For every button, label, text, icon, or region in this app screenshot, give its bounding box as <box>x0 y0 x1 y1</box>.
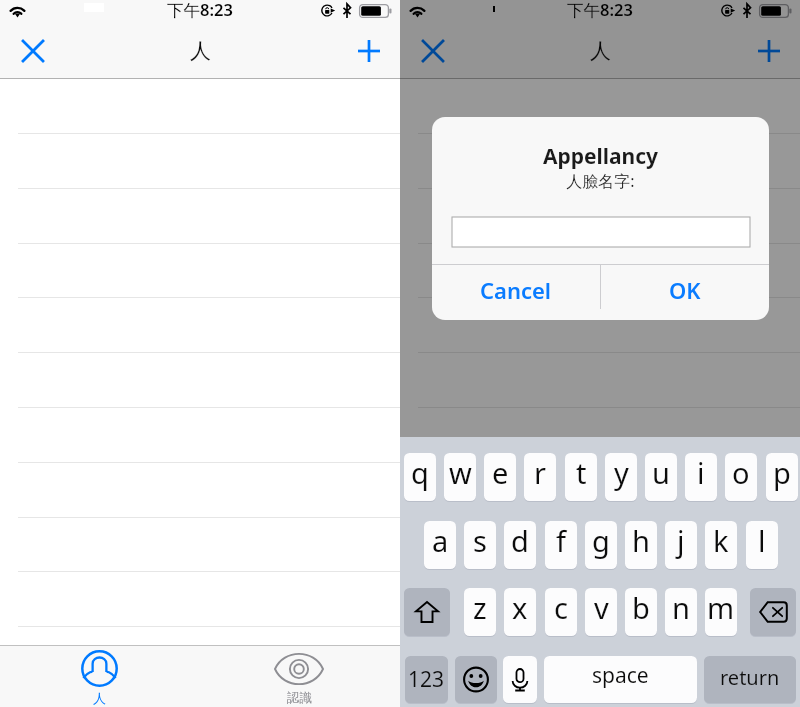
staticText: c <box>554 588 568 627</box>
button[interactable]: l <box>746 521 778 569</box>
button[interactable]: Dictation <box>503 656 537 703</box>
staticText: 人 <box>190 38 211 64</box>
button[interactable]: m <box>705 588 737 636</box>
button[interactable]: g <box>585 521 617 569</box>
button[interactable]: Cancel <box>432 265 600 319</box>
staticText: b <box>632 588 650 627</box>
button[interactable]: c <box>545 588 577 636</box>
button[interactable]: n <box>665 588 697 636</box>
staticText: 123 <box>408 665 445 694</box>
button[interactable] <box>400 188 800 243</box>
staticText: a <box>432 521 449 560</box>
button[interactable] <box>400 408 800 463</box>
button[interactable]: OK <box>601 265 769 319</box>
button[interactable]: f <box>545 521 577 569</box>
button[interactable]: s <box>464 521 496 569</box>
button[interactable]: 認識 <box>200 645 400 707</box>
button[interactable]: Add <box>346 22 391 79</box>
button[interactable]: h <box>625 521 657 569</box>
button[interactable]: k <box>705 521 737 569</box>
button[interactable]: i <box>685 453 717 501</box>
button[interactable] <box>0 517 400 572</box>
button[interactable]: Close <box>10 22 55 79</box>
button[interactable]: r <box>524 453 556 501</box>
button[interactable]: Add <box>746 22 791 79</box>
button[interactable] <box>400 462 800 517</box>
button[interactable]: y <box>605 453 637 501</box>
staticText: i <box>697 453 705 492</box>
button[interactable]: u <box>645 453 677 501</box>
button[interactable] <box>0 353 400 408</box>
staticText: f <box>556 521 566 560</box>
button[interactable] <box>400 627 800 682</box>
button[interactable]: j <box>665 521 697 569</box>
staticText: q <box>411 453 429 492</box>
button[interactable]: b <box>625 588 657 636</box>
staticText: 人臉名字: <box>432 170 769 192</box>
staticText: o <box>732 453 750 492</box>
staticText: n <box>672 588 690 627</box>
button[interactable] <box>0 627 400 682</box>
button[interactable]: o <box>725 453 757 501</box>
staticText: d <box>511 521 529 560</box>
staticText: x <box>512 588 528 627</box>
button[interactable]: d <box>504 521 536 569</box>
staticText: v <box>594 588 609 627</box>
staticText: p <box>773 453 791 492</box>
button[interactable] <box>452 217 750 247</box>
staticText: return <box>720 664 780 691</box>
staticText: Cancel <box>480 275 552 305</box>
button[interactable] <box>400 517 800 572</box>
staticText: s <box>473 521 487 560</box>
button[interactable]: e <box>484 453 516 501</box>
button[interactable] <box>400 298 800 353</box>
staticText: w <box>449 453 472 492</box>
button[interactable] <box>0 408 400 463</box>
button[interactable]: 人 <box>0 645 200 707</box>
staticText: m <box>707 588 735 627</box>
staticText: space <box>592 661 649 690</box>
staticText: 人 <box>590 38 611 64</box>
staticText: 下午8:23 <box>167 0 233 20</box>
staticText: OK <box>669 275 701 305</box>
button[interactable]: w <box>444 453 476 501</box>
button[interactable] <box>400 79 800 134</box>
staticText: z <box>473 588 487 627</box>
button[interactable]: a <box>424 521 456 569</box>
button[interactable]: q <box>404 453 436 501</box>
button[interactable] <box>0 572 400 627</box>
staticText: g <box>592 521 610 560</box>
staticText: e <box>492 453 509 492</box>
staticText: Appellancy <box>432 142 769 171</box>
button[interactable] <box>400 134 800 189</box>
button[interactable]: v <box>585 588 617 636</box>
button[interactable]: space <box>544 656 697 703</box>
button[interactable]: z <box>464 588 496 636</box>
button[interactable] <box>400 572 800 627</box>
button[interactable]: Close <box>410 22 455 79</box>
staticText: u <box>652 453 670 492</box>
staticText: l <box>758 521 766 560</box>
button[interactable]: p <box>766 453 798 501</box>
button[interactable] <box>0 134 400 189</box>
staticText: 認識 <box>287 690 312 706</box>
button[interactable]: t <box>565 453 597 501</box>
button[interactable] <box>0 188 400 243</box>
button[interactable]: Backspace <box>750 588 796 636</box>
staticText: j <box>677 521 685 560</box>
button[interactable] <box>0 79 400 134</box>
button[interactable] <box>400 243 800 298</box>
button[interactable]: return <box>704 656 796 703</box>
button[interactable] <box>0 298 400 353</box>
button[interactable] <box>0 462 400 517</box>
button[interactable]: x <box>504 588 536 636</box>
staticText: r <box>534 453 546 492</box>
button[interactable]: Emoji <box>455 656 497 703</box>
button[interactable]: 123 <box>405 656 448 703</box>
staticText: t <box>576 453 587 492</box>
button[interactable] <box>0 243 400 298</box>
staticText: k <box>713 521 729 560</box>
staticText: h <box>632 521 650 560</box>
button[interactable]: Shift <box>404 588 450 636</box>
